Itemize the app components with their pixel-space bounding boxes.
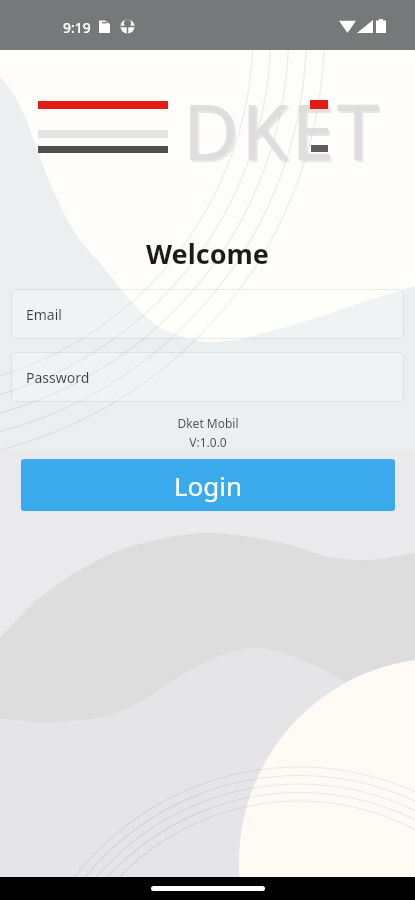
button[interactable]: Login bbox=[21, 459, 395, 511]
staticText: Login bbox=[174, 468, 243, 503]
staticText: V:1.0.0 bbox=[189, 434, 227, 450]
button[interactable]: Password bbox=[11, 352, 404, 402]
staticText: DKET bbox=[185, 81, 385, 185]
staticText: DKET bbox=[183, 79, 383, 183]
staticText: Dket Mobil bbox=[177, 415, 239, 431]
staticText: 9:19 bbox=[63, 18, 91, 37]
staticText: Email bbox=[26, 305, 62, 324]
staticText: Welcome bbox=[0, 235, 415, 272]
button[interactable]: Email bbox=[11, 289, 404, 339]
staticText: Password bbox=[26, 368, 90, 387]
